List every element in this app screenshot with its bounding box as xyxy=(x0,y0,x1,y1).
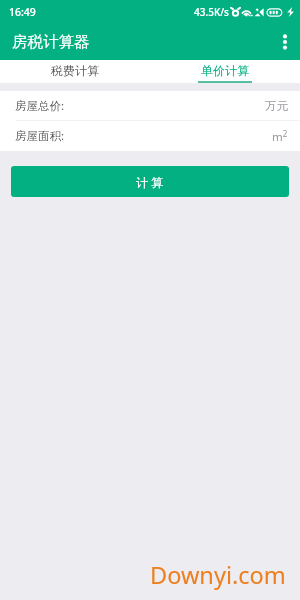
button[interactable]: 房屋总价: xyxy=(0,91,300,120)
button[interactable]: 单价计算 xyxy=(150,60,300,83)
staticText: 房屋总价: xyxy=(15,98,65,114)
staticText: 16:49 xyxy=(9,5,36,19)
button[interactable]: More options xyxy=(270,24,300,60)
staticText: 房屋面积: xyxy=(15,128,65,144)
staticText: 房税计算器 xyxy=(12,32,90,52)
staticText: 43.5K/s xyxy=(194,5,229,19)
button[interactable]: 计 算 xyxy=(11,166,289,197)
staticText: m2 xyxy=(272,128,288,144)
staticText: 万元 xyxy=(265,99,288,113)
staticText: 计 算 xyxy=(136,174,164,190)
staticText: 单价计算 xyxy=(201,63,249,78)
staticText: 税费计算 xyxy=(51,63,99,78)
button[interactable]: 房屋面积: xyxy=(0,121,300,151)
staticText: Downyi.com xyxy=(150,559,286,591)
button[interactable]: 税费计算 xyxy=(0,60,150,83)
